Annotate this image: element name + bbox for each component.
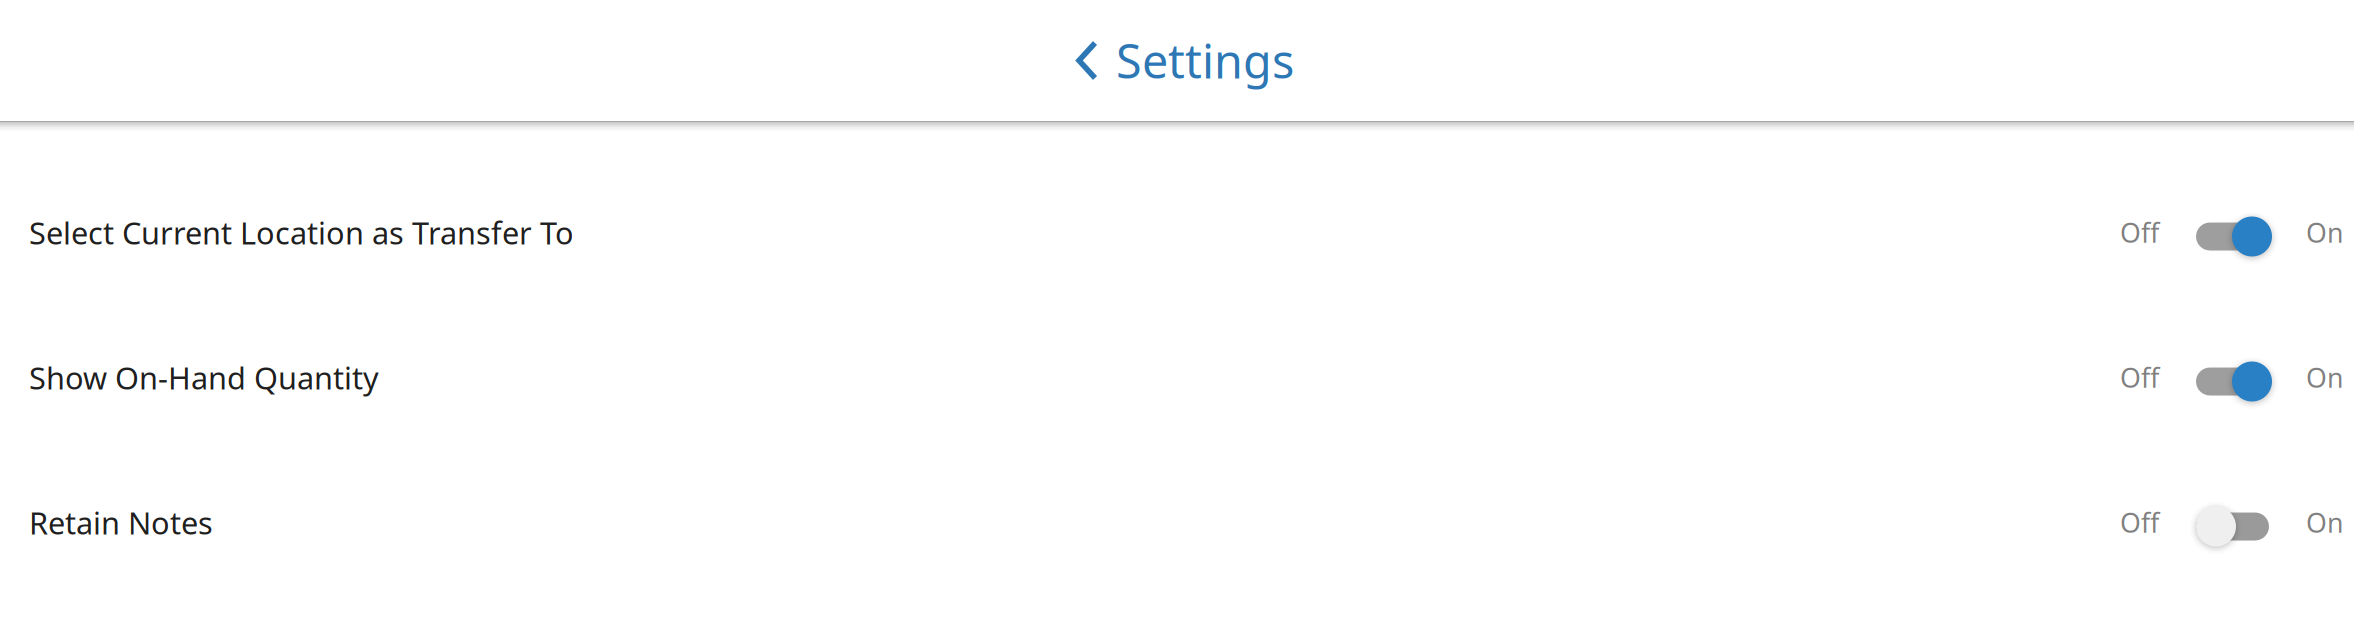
staticText: Show On-Hand Quantity [29,357,379,398]
staticText: Off [2120,505,2159,540]
staticText: Retain Notes [29,502,213,543]
staticText: Select Current Location as Transfer To [29,212,574,253]
staticText: Off [2120,360,2159,395]
staticText: On [2306,505,2343,540]
button[interactable]: Settings [1068,29,1286,91]
staticText: On [2306,215,2343,250]
staticText: Off [2120,215,2159,250]
button[interactable]: Select Current Location as Transfer To [2120,180,2354,284]
button[interactable]: Retain Notes [17,460,228,585]
button[interactable]: Show On-Hand Quantity [2120,325,2354,429]
staticText: On [2306,360,2343,395]
button[interactable]: Retain Notes [2120,470,2354,574]
button[interactable]: Show On-Hand Quantity [17,315,394,440]
button[interactable]: Select Current Location as Transfer To [17,170,589,295]
staticText: Settings [1116,29,1294,91]
